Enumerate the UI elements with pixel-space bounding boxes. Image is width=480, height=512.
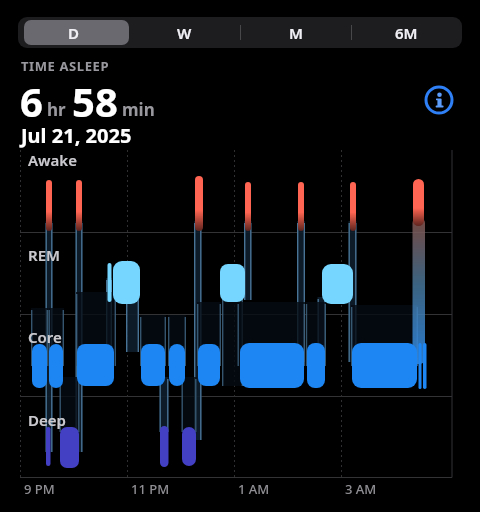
button[interactable]: D (18, 17, 129, 48)
staticText: 6 (20, 74, 43, 128)
staticText: Jul 21, 2025 (21, 122, 132, 149)
staticText: min (122, 98, 155, 121)
staticText: 1 AM (238, 480, 270, 498)
staticText: 6M (395, 23, 418, 43)
staticText: Awake (28, 150, 77, 170)
button[interactable]: M (240, 17, 351, 48)
staticText: Deep (28, 410, 66, 430)
button[interactable]: 6M (351, 17, 462, 48)
staticText: D (68, 23, 79, 43)
button[interactable] (424, 85, 454, 115)
staticText: 11 PM (131, 480, 170, 498)
staticText: REM (28, 245, 60, 265)
staticText: hr (47, 98, 66, 121)
staticText: M (289, 23, 303, 43)
staticText: 9 PM (24, 480, 55, 498)
staticText: W (177, 23, 192, 43)
staticText: 58 (72, 74, 118, 128)
staticText: 3 AM (345, 480, 377, 498)
staticText: TIME ASLEEP (21, 57, 110, 75)
staticText: Core (28, 327, 62, 347)
button[interactable]: W (129, 17, 240, 48)
